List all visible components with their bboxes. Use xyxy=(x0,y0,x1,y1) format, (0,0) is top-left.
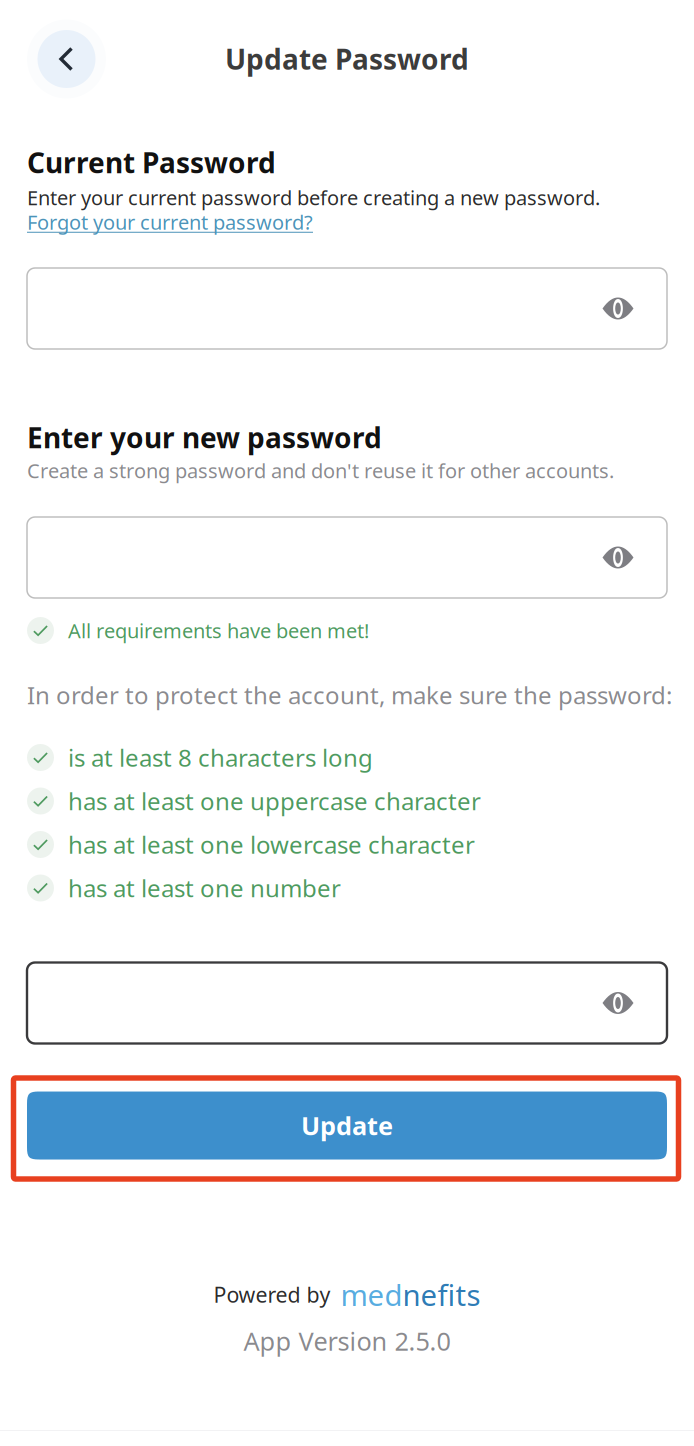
button[interactable]: Update xyxy=(27,1091,667,1159)
button[interactable]: Forgot your current password? xyxy=(27,210,667,234)
staticText: Update xyxy=(301,1109,393,1142)
staticText: has at least one lowercase character xyxy=(68,829,475,860)
staticText: Create a strong password and don't reuse… xyxy=(27,457,614,484)
staticText: Enter your current password before creat… xyxy=(27,184,600,211)
staticText: nefits xyxy=(402,1275,480,1314)
button[interactable]: Show password xyxy=(569,962,667,1043)
staticText: is at least 8 characters long xyxy=(68,742,373,773)
staticText: has at least one number xyxy=(68,872,341,904)
button[interactable]: Back xyxy=(27,19,106,98)
staticText: Powered by xyxy=(213,1280,330,1309)
staticText: Update Password xyxy=(225,40,469,78)
button[interactable]: Show password xyxy=(569,517,667,598)
staticText: Enter your new password xyxy=(27,419,382,456)
staticText: All requirements have been met! xyxy=(68,617,369,644)
staticText: In order to protect the account, make su… xyxy=(27,679,672,711)
staticText: Forgot your current password? xyxy=(27,209,313,235)
staticText: med xyxy=(340,1275,402,1314)
staticText: App Version 2.5.0 xyxy=(243,1324,450,1358)
button[interactable]: Show password xyxy=(569,268,667,349)
staticText: has at least one uppercase character xyxy=(68,785,481,817)
staticText: Current Password xyxy=(27,144,276,181)
